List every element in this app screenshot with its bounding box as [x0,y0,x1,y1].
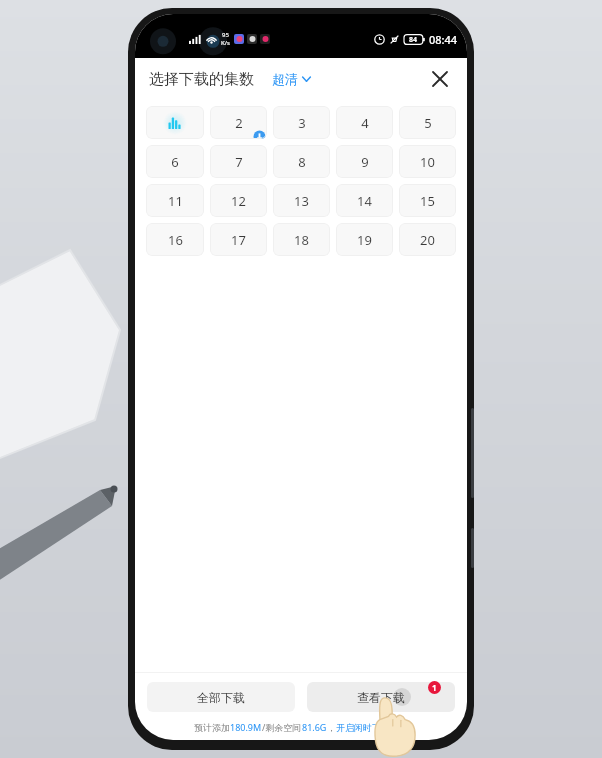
button[interactable]: 19 [336,223,393,256]
staticText: 08:44 [429,32,458,47]
staticText: 81.6G [302,721,327,733]
staticText: 1 [432,682,437,693]
button[interactable]: 6 [146,145,204,178]
staticText: 10 [420,153,435,171]
staticText: 13 [294,192,309,210]
staticText: 5 [424,114,432,132]
staticText: 9 [361,153,369,171]
staticText: 6 [171,153,179,171]
button[interactable]: 9 [336,145,393,178]
staticText: 全部下载 [197,690,245,705]
button[interactable]: 10 [399,145,456,178]
button[interactable]: 8 [273,145,330,178]
button[interactable]: 18 [273,223,330,256]
staticText: 18 [294,231,309,249]
staticText: 180.9M [230,721,262,733]
button[interactable]: 11 [146,184,204,217]
staticText: K/s [221,39,230,47]
staticText: 19 [357,231,372,249]
button[interactable]: 开启闲时下载加速 [336,722,408,733]
staticText: 20 [420,231,435,249]
staticText: 17 [231,231,246,249]
staticText: 选择下载的集数 [149,70,254,89]
button[interactable]: 16 [146,223,204,256]
staticText: 4 [361,114,369,132]
button[interactable]: 全部下载 [147,682,295,712]
staticText: 11 [168,192,183,210]
button[interactable]: 12 [210,184,267,217]
staticText: 14 [357,192,372,210]
staticText: 12 [231,192,246,210]
button[interactable]: 15 [399,184,456,217]
button[interactable]: 20 [399,223,456,256]
button[interactable]: 4 [336,106,393,139]
staticText: 84 [409,35,418,45]
button[interactable]: 13 [273,184,330,217]
staticText: 3 [298,114,306,132]
button[interactable]: Close [425,64,455,94]
staticText: 2 [235,114,243,132]
button[interactable]: 7 [210,145,267,178]
staticText: 95 [222,31,229,39]
button[interactable]: 超清 [270,67,313,91]
staticText: ， [327,722,336,733]
button[interactable]: 查看下载 [307,682,455,712]
staticText: 15 [420,192,435,210]
button[interactable]: 14 [336,184,393,217]
staticText: 16 [168,231,183,249]
staticText: 7 [235,153,243,171]
button[interactable]: 3 [273,106,330,139]
button[interactable]: 17 [210,223,267,256]
staticText: 预计添加 [194,722,230,733]
staticText: 查看下载 [357,690,405,705]
button[interactable]: 5 [399,106,456,139]
staticText: /剩余空间 [262,721,302,733]
staticText: 开启闲时下载加速 [336,722,408,733]
button[interactable] [146,106,204,139]
staticText: 8 [298,153,306,171]
staticText: 超清 [272,71,298,87]
button[interactable]: 2 [210,106,267,139]
